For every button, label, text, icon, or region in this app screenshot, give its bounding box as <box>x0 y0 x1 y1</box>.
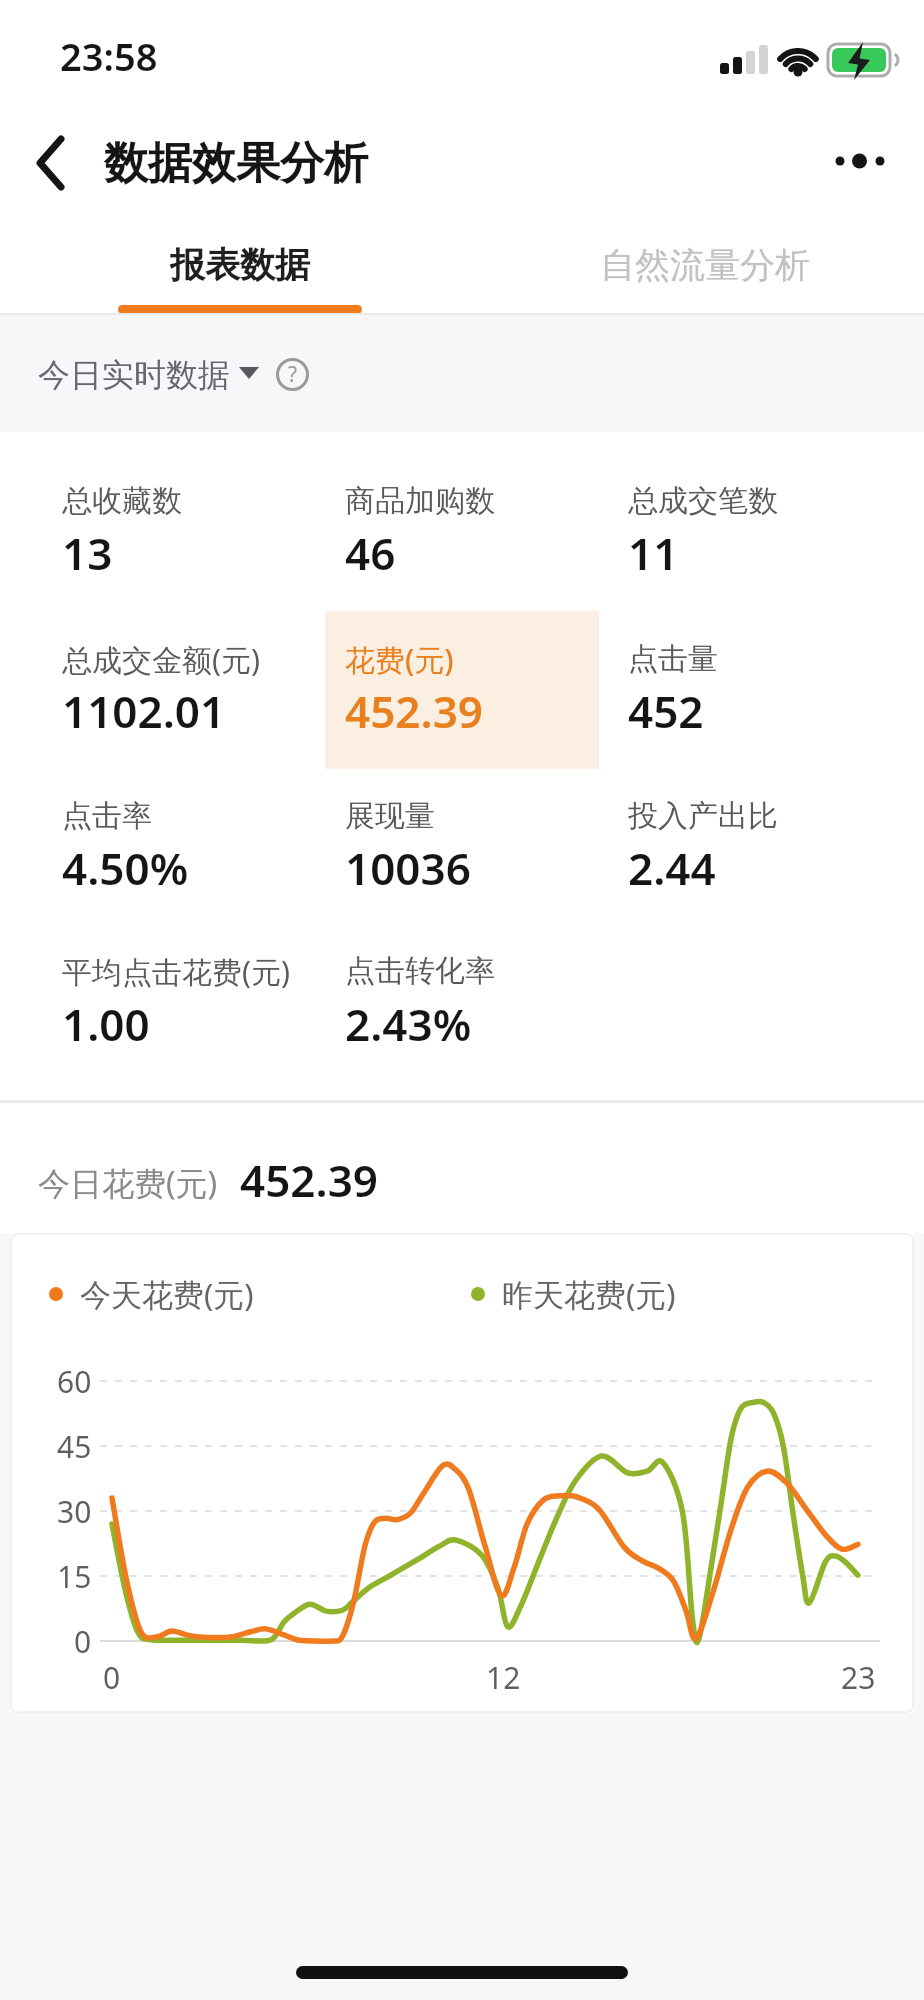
staticText: 今天花费(元) <box>80 1273 254 1315</box>
staticText: 今日花费(元) <box>38 1161 218 1205</box>
staticText: 23:58 <box>60 30 158 80</box>
staticText: 30 <box>57 1491 92 1532</box>
button[interactable] <box>820 135 900 191</box>
button[interactable]: 报表数据 <box>0 225 480 305</box>
staticText: 1102.01 <box>62 681 226 741</box>
button[interactable]: ? <box>276 358 309 391</box>
staticText: 点击量 <box>628 640 718 678</box>
staticText: 平均点击花费(元) <box>62 951 290 992</box>
staticText: 452.39 <box>240 1150 378 1210</box>
staticText: 12 <box>486 1657 521 1698</box>
staticText: 昨天花费(元) <box>502 1273 676 1315</box>
staticText: 总收藏数 <box>62 482 182 520</box>
staticText: 总成交金额(元) <box>62 639 260 680</box>
staticText: 60 <box>57 1361 92 1402</box>
staticText: 23 <box>841 1657 876 1698</box>
staticText: 45 <box>57 1426 92 1467</box>
button[interactable]: 自然流量分析 <box>480 225 924 305</box>
staticText: 0 <box>74 1621 92 1662</box>
staticText: ? <box>288 360 298 389</box>
staticText: 452 <box>628 681 704 741</box>
staticText: 13 <box>62 523 113 583</box>
staticText: 今日实时数据 <box>38 355 230 395</box>
staticText: 花费(元) <box>345 639 454 680</box>
staticText: 4.50% <box>62 838 189 898</box>
staticText: 2.44 <box>628 838 716 898</box>
staticText: 46 <box>345 523 396 583</box>
staticText: 11 <box>628 523 679 583</box>
staticText: 投入产出比 <box>628 797 778 835</box>
staticText: 点击率 <box>62 797 152 835</box>
staticText: 2.43% <box>345 994 472 1054</box>
button[interactable] <box>24 130 80 196</box>
staticText: 自然流量分析 <box>600 243 810 287</box>
staticText: 报表数据 <box>170 243 310 287</box>
staticText: 点击转化率 <box>345 952 495 990</box>
staticText: 展现量 <box>345 797 435 835</box>
staticText: 数据效果分析 <box>104 136 368 191</box>
staticText: 15 <box>57 1556 92 1597</box>
staticText: 10036 <box>345 838 471 898</box>
staticText: 0 <box>103 1657 121 1698</box>
staticText: 452.39 <box>345 681 483 741</box>
staticText: 1.00 <box>62 994 150 1054</box>
staticText: 总成交笔数 <box>628 482 778 520</box>
staticText: 商品加购数 <box>345 482 495 520</box>
